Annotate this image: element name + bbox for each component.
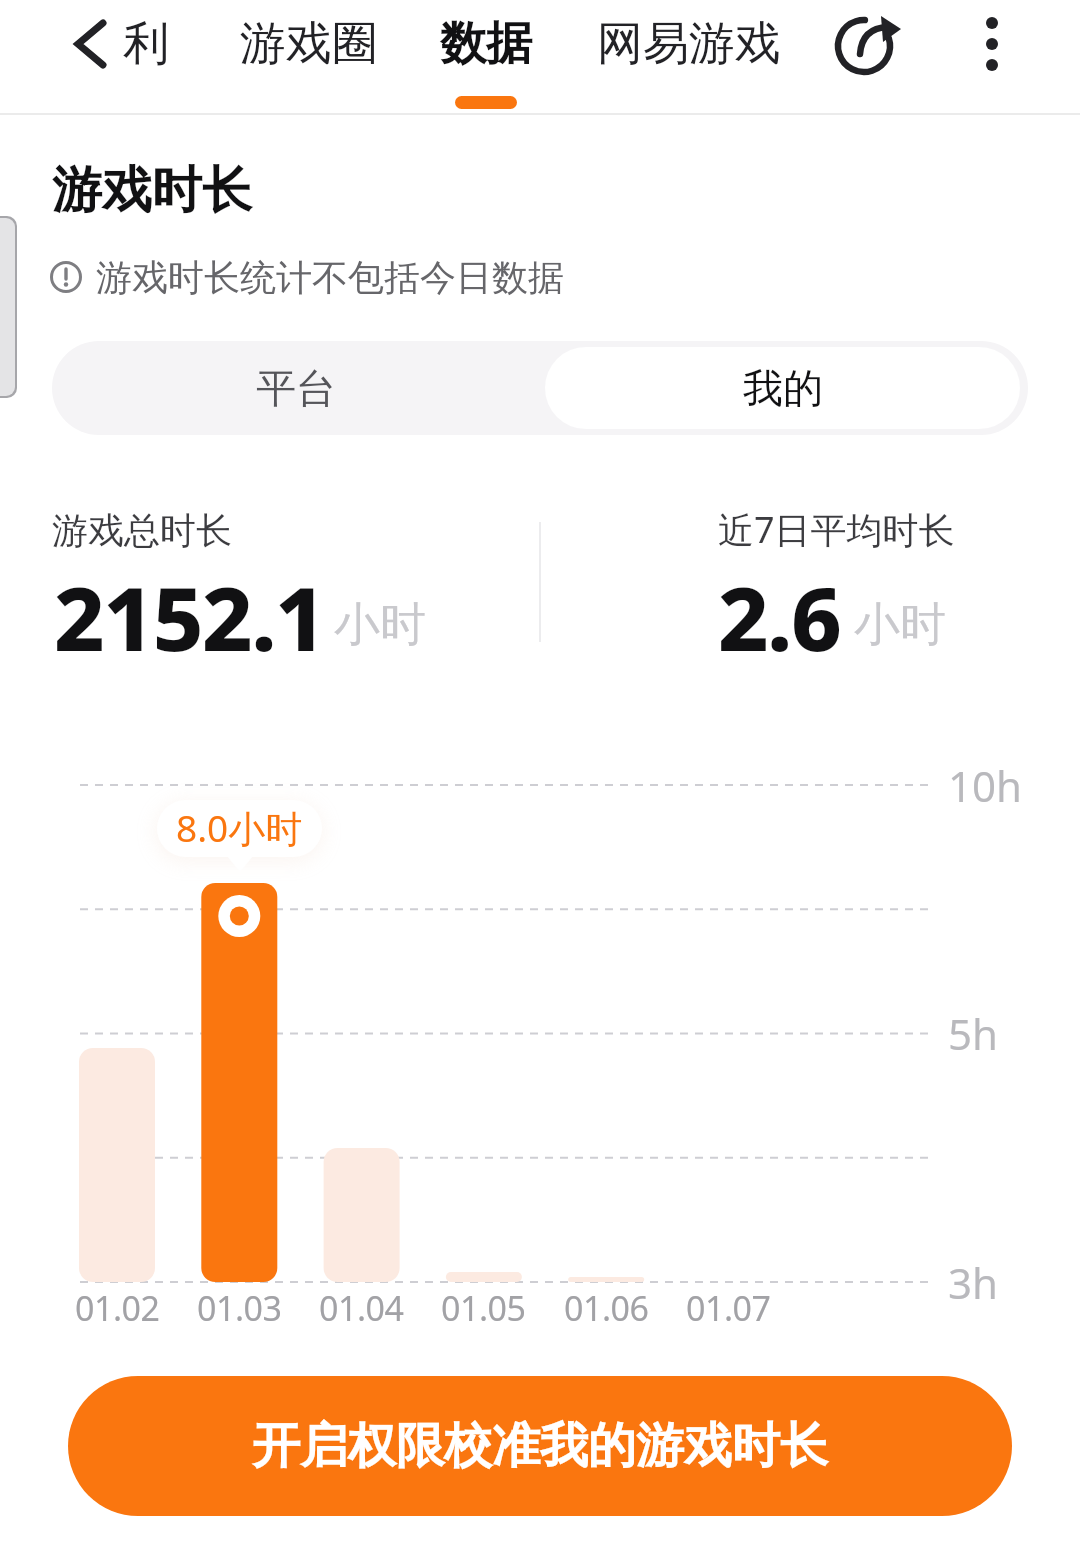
- staticText: 5h: [948, 1005, 998, 1062]
- staticText: 平台: [256, 363, 336, 413]
- staticText: 8.0小时: [176, 802, 303, 853]
- staticText: 01.03: [197, 1285, 282, 1331]
- button[interactable]: 游戏圈: [224, 4, 394, 84]
- staticText: 01.02: [75, 1285, 160, 1331]
- button[interactable]: 数据: [426, 4, 546, 84]
- button[interactable]: 平台: [52, 341, 540, 435]
- button[interactable]: [960, 6, 1030, 76]
- staticText: 01.04: [319, 1285, 404, 1331]
- button[interactable]: 我的: [545, 347, 1020, 429]
- staticText: 游戏圈: [240, 15, 378, 73]
- staticText: 数据: [440, 15, 532, 73]
- staticText: 游戏时长: [52, 159, 252, 222]
- staticText: 3h: [948, 1254, 998, 1311]
- staticText: 开启权限校准我的游戏时长: [252, 1416, 828, 1476]
- staticText: 01.06: [564, 1285, 649, 1331]
- button[interactable]: 网易游戏: [586, 4, 791, 84]
- staticText: 01.07: [686, 1285, 771, 1331]
- staticText: 近7日平均时长: [718, 505, 955, 554]
- staticText: 游戏总时长: [52, 508, 232, 553]
- button[interactable]: 开启权限校准我的游戏时长: [68, 1376, 1012, 1516]
- staticText: 小时: [854, 596, 946, 654]
- staticText: 01.05: [441, 1285, 526, 1331]
- staticText: 10h: [948, 757, 1023, 814]
- staticText: 游戏时长统计不包括今日数据: [96, 255, 564, 300]
- staticText: 2152.1: [54, 557, 325, 677]
- button[interactable]: [60, 10, 120, 80]
- staticText: 小时: [334, 596, 426, 654]
- button[interactable]: [830, 6, 900, 76]
- staticText: 利: [123, 15, 169, 73]
- staticText: 我的: [743, 363, 823, 413]
- staticText: 网易游戏: [597, 15, 781, 73]
- staticText: 2.6: [718, 557, 841, 677]
